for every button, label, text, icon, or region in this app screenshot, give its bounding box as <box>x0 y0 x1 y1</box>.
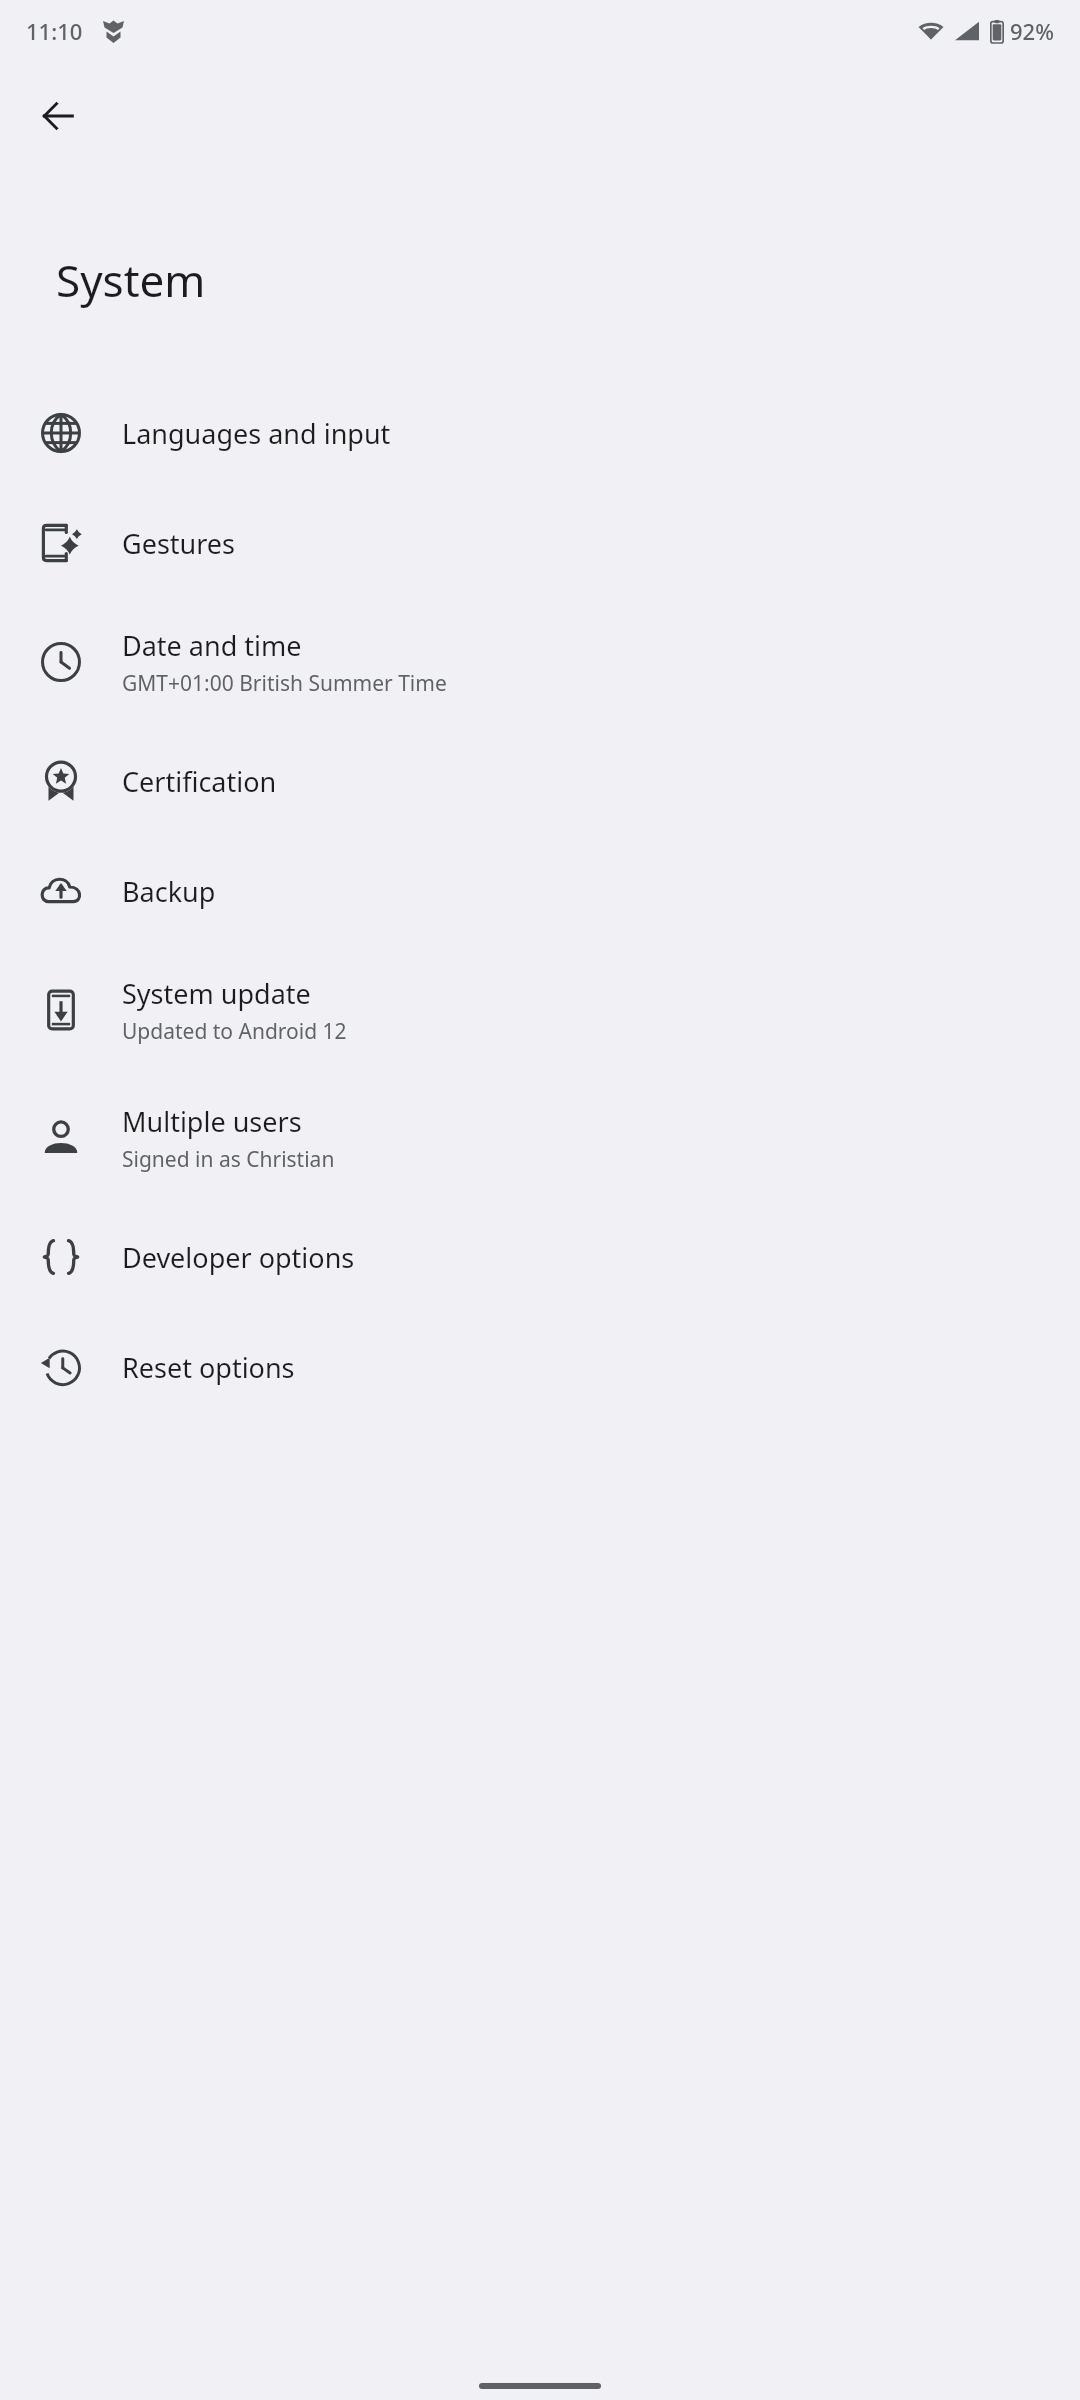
staticText: Developer options <box>122 1239 355 1276</box>
staticText: Gestures <box>122 525 236 562</box>
staticText: 92% <box>1010 16 1054 46</box>
staticText: Backup <box>122 873 216 910</box>
staticText: Certification <box>122 763 277 800</box>
button[interactable]: Certification <box>0 726 1080 836</box>
staticText: System <box>56 250 206 310</box>
button[interactable]: Backup <box>0 836 1080 946</box>
button[interactable]: Back <box>20 78 96 154</box>
button[interactable]: Date and time <box>0 598 1080 726</box>
staticText: Updated to Android 12 <box>122 1017 347 1046</box>
button[interactable]: Gestures <box>0 488 1080 598</box>
button[interactable]: Languages and input <box>0 378 1080 488</box>
staticText: 11:10 <box>26 16 83 46</box>
staticText: Reset options <box>122 1349 295 1386</box>
staticText: GMT+01:00 British Summer Time <box>122 669 447 698</box>
staticText: Signed in as Christian <box>122 1145 335 1174</box>
button[interactable]: Multiple users <box>0 1074 1080 1202</box>
staticText: System update <box>122 975 311 1012</box>
staticText: Date and time <box>122 627 302 664</box>
staticText: Languages and input <box>122 415 391 452</box>
button[interactable]: System update <box>0 946 1080 1074</box>
button[interactable]: Reset options <box>0 1312 1080 1422</box>
button[interactable]: Developer options <box>0 1202 1080 1312</box>
staticText: Multiple users <box>122 1103 302 1140</box>
